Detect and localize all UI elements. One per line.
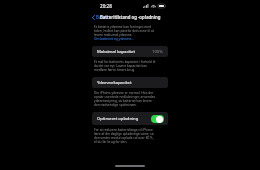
button[interactable]: Optimeret opladning xyxy=(151,115,164,123)
staticText: til du får brug for den. xyxy=(94,140,128,144)
staticText: For at reducere batterislitage vil iPhon… xyxy=(94,128,153,132)
staticText: da det var nyt. Lavere kapacitet kan xyxy=(94,64,148,68)
staticText: Optimeret opladning xyxy=(97,116,139,122)
staticText: 100% xyxy=(152,49,163,55)
staticText: den venter med at oplade ud over 80 %, xyxy=(94,136,154,140)
staticText: Batteritilstand og -opladning xyxy=(100,14,161,20)
button[interactable]: Om batteriet og ydeevne... xyxy=(94,37,134,41)
staticText: ydeevnestyring, så batteriet kan levere xyxy=(94,99,152,103)
staticText: 20:28 xyxy=(100,3,112,9)
staticText: Batteri xyxy=(96,14,110,20)
staticText: levere maksimal ydeevne. xyxy=(94,33,133,37)
staticText: tiden, hvilket kan påvirke dets evne til… xyxy=(94,29,154,33)
button[interactable]: Maksimal kapacitet xyxy=(92,46,168,57)
staticText: Ydeevnekapacitet xyxy=(97,80,132,86)
staticText: Din iPhone-ydeevne er normal. Hvis der xyxy=(94,91,154,95)
staticText: Maksimal kapacitet xyxy=(97,49,135,55)
staticText: den nødvendige spidsstrøm. xyxy=(94,103,137,107)
button[interactable]: Back xyxy=(88,12,114,22)
staticText: lære af din daglige opladningsrutine, så xyxy=(94,132,154,136)
other: Back xyxy=(92,15,95,20)
staticText: opstår uventede nedlukninger, anvendes xyxy=(94,95,156,99)
staticText: Et mål for batteriets kapacitet i forhol… xyxy=(94,60,156,64)
staticText: medføre færre timers brug. xyxy=(94,68,136,72)
staticText: Et batteris ydeevne kan forringes med xyxy=(94,25,152,29)
button[interactable]: Ydeevnekapacitet xyxy=(92,77,168,88)
button[interactable]: Optimeret opladning xyxy=(92,112,168,125)
